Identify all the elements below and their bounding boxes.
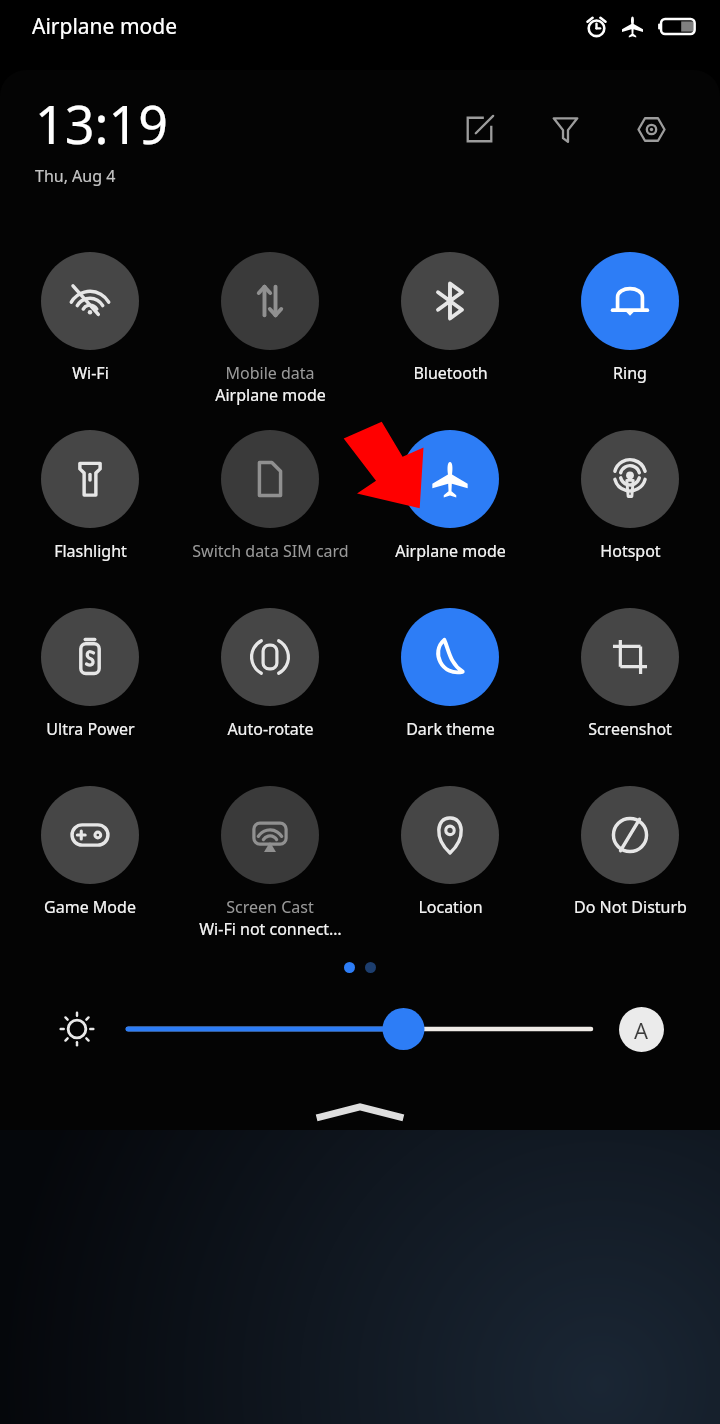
staticText: Airplane mode xyxy=(215,384,326,406)
button[interactable]: Screen Cast xyxy=(180,774,360,952)
button[interactable]: Collapse xyxy=(0,1093,720,1130)
staticText: Flashlight xyxy=(54,540,127,562)
staticText: Ring xyxy=(613,362,647,384)
staticText: Wi-Fi xyxy=(72,362,109,384)
button[interactable]: Mobile data xyxy=(180,240,360,418)
staticText: Airplane mode xyxy=(32,12,178,41)
button[interactable]: Switch data SIM card xyxy=(180,418,360,596)
button[interactable]: Game Mode xyxy=(0,774,180,952)
staticText: Game Mode xyxy=(44,896,136,918)
staticText: Screenshot xyxy=(588,718,672,740)
button[interactable]: Auto brightness xyxy=(619,1007,664,1052)
button[interactable]: Hotspot xyxy=(540,418,720,596)
staticText: Auto-rotate xyxy=(227,718,314,740)
staticText: 13:19 xyxy=(35,88,168,159)
button[interactable]: Dark theme xyxy=(360,596,540,774)
button[interactable]: Auto-rotate xyxy=(180,596,360,774)
button[interactable]: Flashlight xyxy=(0,418,180,596)
staticText: Do Not Disturb xyxy=(574,896,687,918)
staticText: Thu, Aug 4 xyxy=(35,165,116,187)
button[interactable]: Ring xyxy=(540,240,720,418)
button[interactable]: Edit xyxy=(456,106,502,152)
button[interactable]: Screenshot xyxy=(540,596,720,774)
staticText: Screen Cast xyxy=(226,896,314,918)
button[interactable]: Bluetooth xyxy=(360,240,540,418)
staticText: Ultra Power xyxy=(46,718,135,740)
staticText: Switch data SIM card xyxy=(192,540,349,562)
staticText: Dark theme xyxy=(406,718,495,740)
staticText: Bluetooth xyxy=(413,362,488,384)
staticText: Airplane mode xyxy=(395,540,506,562)
staticText: Mobile data xyxy=(225,362,315,384)
button[interactable]: Wi-Fi xyxy=(0,240,180,418)
button[interactable]: Location xyxy=(360,774,540,952)
button[interactable]: Airplane mode xyxy=(360,418,540,596)
button[interactable]: Brightness xyxy=(128,1006,591,1052)
staticText: A xyxy=(634,1015,649,1045)
button[interactable]: Settings xyxy=(628,106,674,152)
staticText: Hotspot xyxy=(600,540,661,562)
staticText: Wi-Fi not connect… xyxy=(199,918,342,940)
button[interactable]: Filter xyxy=(542,106,588,152)
button[interactable]: Do Not Disturb xyxy=(540,774,720,952)
staticText: Location xyxy=(418,896,483,918)
button[interactable]: Ultra Power xyxy=(0,596,180,774)
